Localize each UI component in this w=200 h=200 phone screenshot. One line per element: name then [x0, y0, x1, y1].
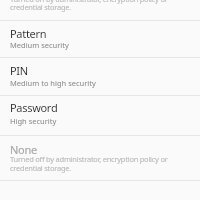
staticText: Turned off by administrator, encryption …: [10, 154, 168, 164]
button[interactable]: PIN: [0, 58, 200, 95]
staticText: Medium security: [10, 40, 69, 50]
button[interactable]: Pattern: [0, 21, 200, 58]
button[interactable]: None: [0, 136, 200, 180]
staticText: Pattern: [10, 26, 47, 41]
button[interactable]: Password: [0, 95, 200, 135]
staticText: credential storage.: [10, 163, 72, 173]
staticText: PIN: [10, 63, 28, 78]
staticText: High security: [10, 116, 57, 126]
staticText: Password: [10, 100, 58, 115]
staticText: credential storage.: [10, 2, 72, 12]
staticText: None: [10, 142, 37, 157]
staticText: Medium to high security: [10, 78, 96, 88]
staticText: Turned off by administrator, encryption …: [10, 0, 168, 4]
